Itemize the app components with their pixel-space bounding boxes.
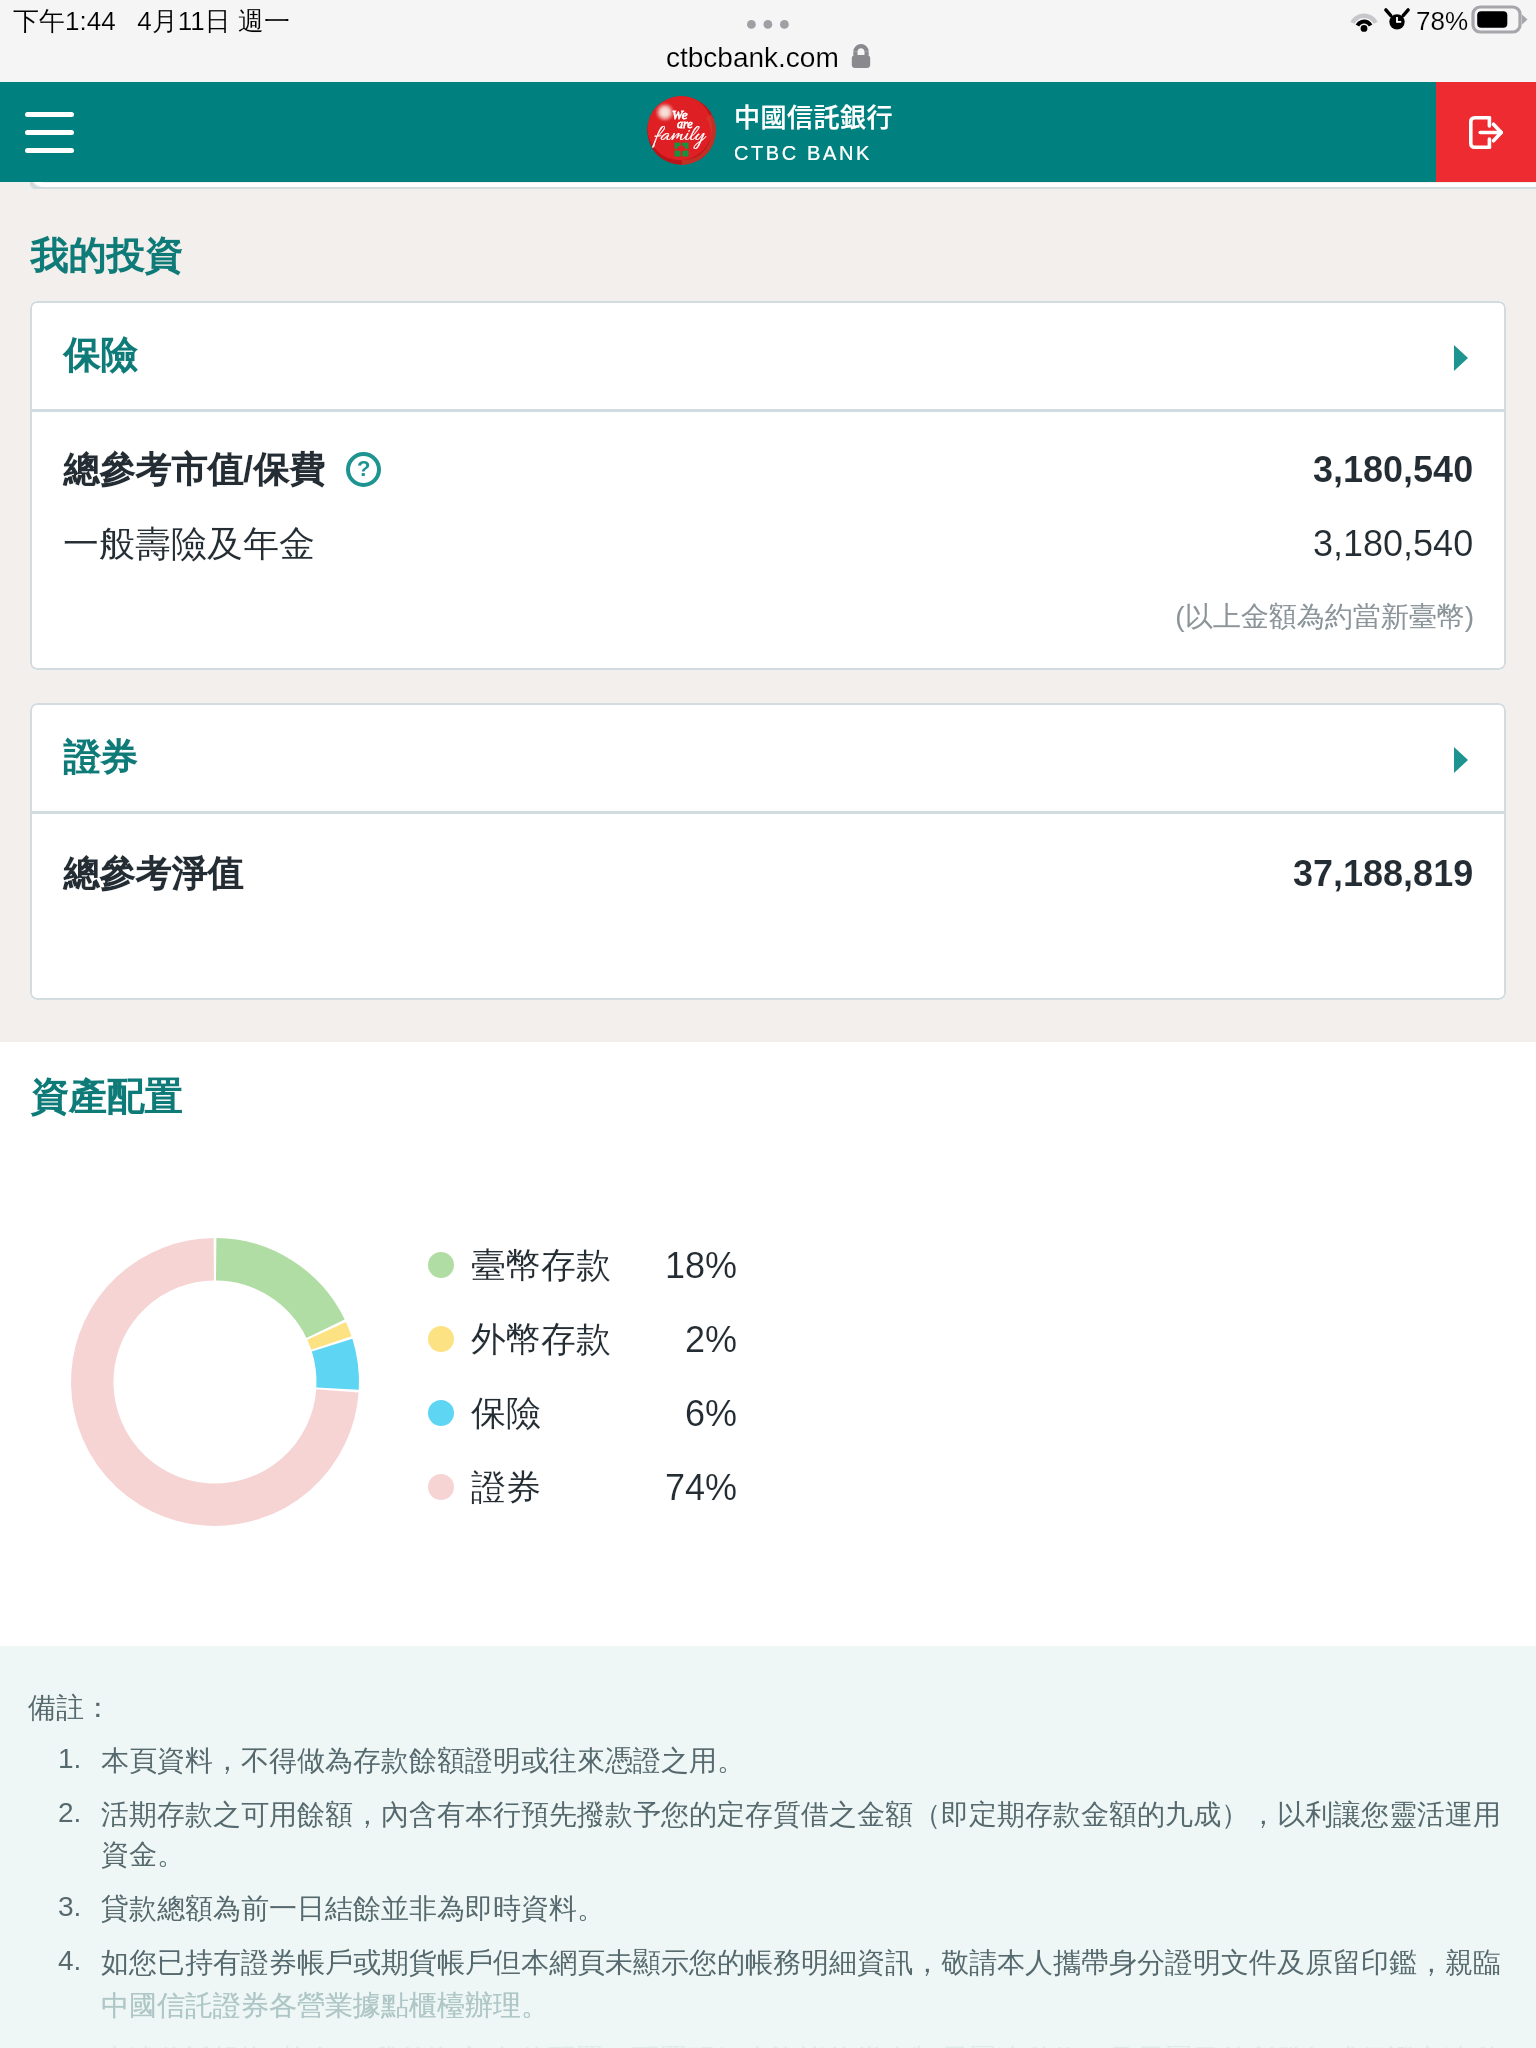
- staticText: 證券: [471, 1465, 541, 1509]
- button[interactable]: 保險: [30, 301, 1506, 409]
- staticText: 37,188,819: [1293, 853, 1474, 893]
- staticText: 6%: [685, 1393, 738, 1433]
- staticText: 18%: [665, 1245, 738, 1285]
- staticText: 臺幣存款: [471, 1243, 611, 1287]
- staticText: 3,180,540: [1313, 449, 1474, 489]
- staticText: ?: [357, 456, 371, 481]
- button[interactable]: 證券: [30, 703, 1506, 811]
- staticText: 備註：: [28, 1690, 112, 1725]
- staticText: 74%: [665, 1467, 738, 1507]
- staticText: 1.: [58, 1743, 101, 1774]
- staticText: 下午1:44 4月11日 週一: [13, 5, 290, 38]
- staticText: 3.: [58, 1891, 101, 1922]
- staticText: 中國信託銀行: [734, 97, 894, 135]
- button[interactable]: 臺幣存款: [428, 1228, 738, 1302]
- button[interactable]: Menu: [0, 82, 98, 182]
- staticText: 外幣存款: [471, 1317, 611, 1361]
- button[interactable]: 保險: [428, 1376, 738, 1450]
- staticText: 保險: [63, 332, 137, 379]
- button[interactable]: CTBC Bank home: [647, 96, 894, 165]
- staticText: CTBC BANK: [734, 142, 872, 164]
- staticText: 3,180,540: [1313, 523, 1474, 563]
- staticText: family: [654, 122, 705, 151]
- button[interactable]: More information: [346, 452, 381, 487]
- staticText: 上述信託投資(基金)、我的資產/負債配置，配置明細查詢皆約當金額需屬速動值，且需…: [101, 2042, 1506, 2048]
- staticText: 2%: [685, 1319, 738, 1359]
- staticText: 如您已持有證券帳戶或期貨帳戶但本網頁未顯示您的帳務明細資訊，敬請本人攜帶身分證明…: [101, 1945, 1501, 1980]
- staticText: 本頁資料，不得做為存款餘額證明或往來憑證之用。: [101, 1743, 745, 1778]
- button[interactable]: Logout: [1436, 82, 1536, 182]
- staticText: 2.: [58, 1797, 101, 1828]
- staticText: ctbcbank.com: [666, 42, 839, 73]
- staticText: 貸款總額為前一日結餘並非為即時資料。: [101, 1891, 605, 1926]
- staticText: 我的投資: [30, 232, 182, 280]
- staticText: 中國信託證券各營業據點櫃檯辦理。: [101, 1988, 549, 2023]
- staticText: 證券: [63, 734, 137, 781]
- staticText: 一般壽險及年金: [63, 521, 315, 566]
- staticText: 4.: [58, 1945, 101, 1976]
- staticText: 保險: [471, 1391, 541, 1435]
- staticText: 資產配置: [30, 1073, 182, 1121]
- staticText: are: [677, 117, 693, 130]
- button[interactable]: 證券: [428, 1450, 738, 1524]
- staticText: (以上金額為約當新臺幣): [63, 599, 1474, 634]
- staticText: 78%: [1416, 6, 1469, 35]
- staticText: We: [672, 107, 688, 121]
- staticText: 總參考市值/保費: [63, 447, 326, 492]
- staticText: 活期存款之可用餘額，內含有本行預先撥款予您的定存質借之金額（即定期存款金額的九成…: [101, 1797, 1506, 1872]
- staticText: 總參考淨值: [63, 851, 243, 896]
- button[interactable]: 外幣存款: [428, 1302, 738, 1376]
